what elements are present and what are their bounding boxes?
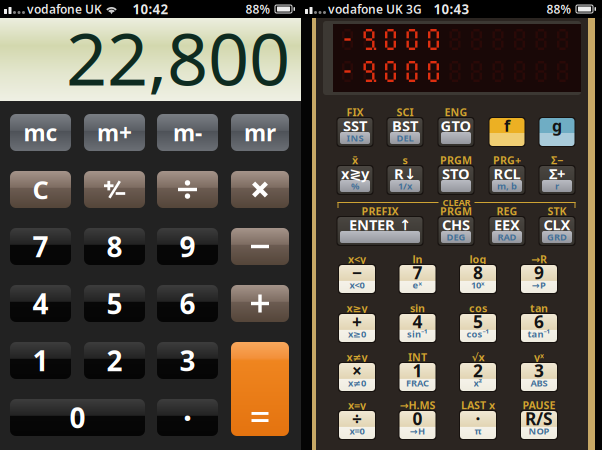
button[interactable]: x≷y bbox=[337, 166, 372, 194]
button[interactable]: 1 bbox=[10, 342, 71, 379]
button[interactable]: 7 bbox=[10, 228, 71, 265]
button[interactable]: 4 bbox=[399, 314, 435, 342]
staticText: GTO bbox=[440, 116, 471, 135]
staticText: 6 bbox=[534, 310, 544, 333]
staticText: DEG bbox=[446, 231, 465, 243]
button[interactable]: Σ+ bbox=[539, 166, 574, 194]
button[interactable]: − bbox=[339, 265, 375, 293]
button[interactable]: 0 bbox=[10, 399, 145, 436]
button[interactable]: Divide bbox=[157, 171, 218, 208]
button[interactable]: Equals bbox=[231, 342, 289, 436]
button[interactable]: 6 bbox=[521, 314, 557, 342]
button[interactable]: 2 bbox=[460, 363, 496, 391]
button[interactable]: m- bbox=[157, 114, 218, 151]
button[interactable]: R/S bbox=[521, 411, 557, 439]
button[interactable]: + bbox=[339, 314, 375, 342]
button[interactable]: ÷ bbox=[339, 411, 375, 439]
staticText: REG bbox=[496, 204, 517, 218]
staticText: EEX bbox=[494, 215, 520, 234]
staticText: 1/x bbox=[398, 180, 412, 192]
button[interactable]: Plus minus bbox=[84, 171, 145, 208]
staticText: × bbox=[352, 359, 362, 382]
button[interactable]: 4 bbox=[10, 285, 71, 322]
staticText: 8 bbox=[106, 228, 122, 265]
staticText: cos bbox=[469, 301, 487, 315]
staticText: CLX bbox=[543, 215, 570, 234]
button[interactable]: GTO bbox=[438, 118, 473, 146]
staticText: 6 bbox=[179, 285, 195, 322]
button[interactable]: m+ bbox=[84, 114, 145, 151]
button[interactable]: C bbox=[10, 171, 71, 208]
button[interactable]: 3 bbox=[521, 363, 557, 391]
button[interactable]: EEX bbox=[489, 217, 524, 245]
staticText: mc bbox=[23, 117, 57, 147]
button[interactable]: 3 bbox=[157, 342, 218, 379]
staticText: x≠0 bbox=[348, 377, 366, 389]
staticText: INS bbox=[346, 132, 363, 144]
button[interactable]: SST bbox=[337, 118, 372, 146]
staticText: 22,800 bbox=[66, 10, 290, 105]
button[interactable]: 5 bbox=[84, 285, 145, 322]
button[interactable]: Minus bbox=[231, 228, 289, 265]
staticText: 5 bbox=[106, 285, 122, 322]
staticText: 1 bbox=[412, 359, 422, 382]
staticText: 9 bbox=[179, 228, 195, 265]
staticText: s bbox=[402, 153, 407, 167]
staticText: →R bbox=[531, 252, 547, 266]
staticText: 7 bbox=[412, 261, 422, 284]
button[interactable]: 8 bbox=[460, 265, 496, 293]
button[interactable]: BST bbox=[387, 118, 422, 146]
staticText: log bbox=[469, 252, 486, 266]
button[interactable]: 8 bbox=[84, 228, 145, 265]
button[interactable]: mc bbox=[10, 114, 71, 151]
button[interactable]: 9 bbox=[521, 265, 557, 293]
button[interactable]: 7 bbox=[399, 265, 435, 293]
button[interactable]: 2 bbox=[84, 342, 145, 379]
staticText: →P bbox=[532, 279, 546, 291]
staticText: 88% bbox=[546, 1, 571, 17]
staticText: 4 bbox=[412, 310, 422, 333]
button[interactable]: 0 bbox=[399, 411, 435, 439]
button[interactable]: STO bbox=[438, 166, 473, 194]
button[interactable]: · bbox=[157, 399, 218, 436]
staticText: ln bbox=[412, 252, 422, 266]
button[interactable]: g bbox=[539, 118, 574, 146]
staticText: FIX bbox=[346, 105, 363, 119]
staticText: eˣ bbox=[412, 279, 422, 291]
staticText: 10:42 bbox=[132, 0, 168, 18]
staticText: 3 bbox=[179, 342, 195, 379]
button[interactable]: 9 bbox=[157, 228, 218, 265]
staticText: x=0 bbox=[349, 425, 364, 437]
staticText: PRGM bbox=[440, 153, 472, 167]
staticText: SCI bbox=[396, 105, 413, 119]
staticText: 0 bbox=[412, 407, 422, 430]
staticText: ÷ bbox=[352, 407, 362, 430]
staticText: 9 bbox=[534, 261, 544, 284]
button[interactable]: · bbox=[460, 411, 496, 439]
button[interactable]: Plus bbox=[231, 285, 289, 322]
button[interactable]: × bbox=[339, 363, 375, 391]
staticText: x≠y bbox=[346, 350, 367, 364]
staticText: INT bbox=[408, 350, 427, 364]
staticText: CLEAR bbox=[442, 196, 470, 209]
staticText: 4 bbox=[32, 285, 48, 322]
staticText: LAST x bbox=[461, 398, 495, 412]
staticText: + bbox=[352, 310, 362, 333]
button[interactable]: 5 bbox=[460, 314, 496, 342]
button[interactable]: f bbox=[489, 118, 524, 146]
button[interactable]: R↓ bbox=[387, 166, 422, 194]
button[interactable]: CHS bbox=[438, 217, 473, 245]
staticText: 3G bbox=[406, 1, 422, 17]
button[interactable]: RCL bbox=[489, 166, 524, 194]
staticText: x<y bbox=[348, 252, 366, 266]
button[interactable]: ENTER ↑ bbox=[337, 217, 422, 245]
staticText: r bbox=[555, 180, 559, 192]
button[interactable]: 1 bbox=[399, 363, 435, 391]
button[interactable]: mr bbox=[231, 114, 289, 151]
staticText: · bbox=[183, 396, 192, 439]
button[interactable]: 6 bbox=[157, 285, 218, 322]
staticText: 5 bbox=[473, 310, 483, 333]
staticText: 3 bbox=[534, 359, 544, 382]
button[interactable]: CLX bbox=[539, 217, 574, 245]
button[interactable]: Multiply bbox=[231, 171, 289, 208]
